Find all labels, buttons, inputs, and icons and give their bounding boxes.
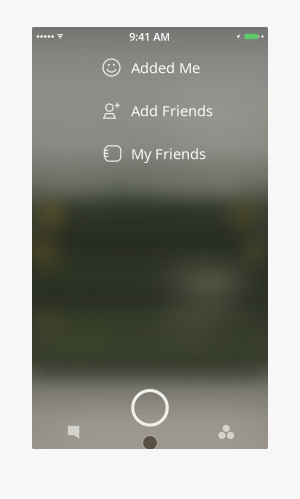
- staticText: Added Me: [131, 58, 200, 77]
- button[interactable]: Added Me: [32, 46, 268, 89]
- button[interactable]: Take snap: [124, 382, 176, 434]
- staticText: My Friends: [131, 144, 206, 163]
- button[interactable]: My Friends: [32, 132, 268, 175]
- staticText: 9:41 AM: [129, 29, 170, 44]
- button[interactable]: Memories: [137, 435, 163, 451]
- staticText: Add Friends: [131, 101, 213, 120]
- button[interactable]: Stories: [209, 419, 243, 445]
- button[interactable]: Add Friends: [32, 89, 268, 132]
- button[interactable]: Chats: [57, 419, 91, 445]
